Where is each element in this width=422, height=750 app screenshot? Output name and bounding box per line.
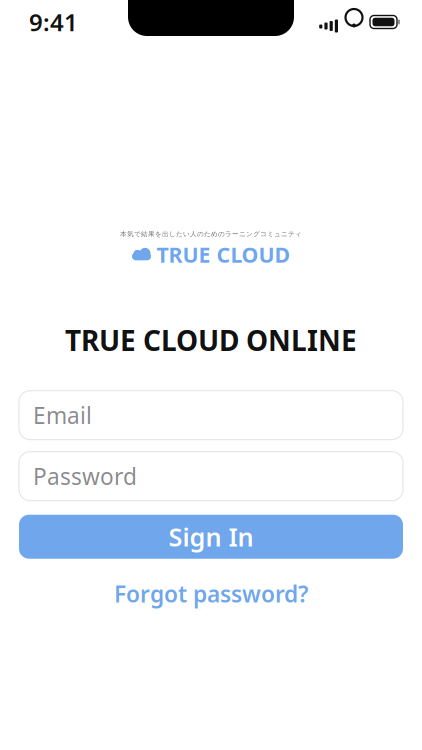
button[interactable]: Forgot password?: [102, 574, 320, 614]
staticText: TRUE CLOUD: [156, 240, 290, 268]
staticText: Forgot password?: [114, 579, 308, 609]
staticText: Password: [33, 461, 137, 491]
staticText: Sign In: [168, 520, 253, 553]
button[interactable]: Password: [19, 452, 403, 501]
staticText: Email: [33, 400, 92, 430]
staticText: TRUE CLOUD ONLINE: [65, 321, 357, 359]
button[interactable]: Email: [19, 391, 403, 440]
staticText: 本気で結果を出したい人のためのラーニングコミュニティ: [120, 230, 302, 238]
staticText: 9:41: [29, 6, 78, 38]
button[interactable]: Sign In: [19, 515, 403, 559]
